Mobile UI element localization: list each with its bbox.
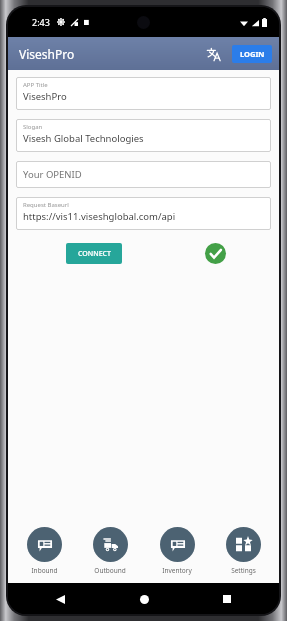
button[interactable]: Recent apps (217, 589, 237, 609)
staticText: LOGIN (240, 49, 265, 59)
staticText: Slogan (23, 123, 43, 131)
button[interactable]: Back (50, 589, 70, 609)
staticText: Your OPENID (23, 168, 82, 181)
button[interactable]: LOGIN (232, 45, 272, 63)
button[interactable]: Home (134, 589, 154, 609)
button[interactable]: APP Title (16, 77, 271, 110)
button[interactable]: Inventory (146, 527, 208, 575)
other: Connection successful (205, 243, 226, 264)
button[interactable]: Outbound (79, 527, 141, 575)
staticText: Request Baseurl (23, 201, 69, 209)
staticText: APP Title (23, 81, 48, 89)
staticText: CONNECT (78, 249, 111, 259)
button[interactable]: Settings (212, 527, 274, 575)
staticText: https://vis11.viseshglobal.com/api (23, 210, 176, 223)
staticText: Settings (231, 566, 256, 575)
button[interactable]: Your OPENID (16, 161, 271, 188)
button[interactable]: Inbound (13, 527, 75, 575)
staticText: Outbound (94, 566, 126, 575)
staticText: 2:43 (32, 16, 50, 28)
staticText: Inventory (162, 566, 192, 575)
button[interactable]: CONNECT (66, 243, 122, 264)
button[interactable]: Slogan (16, 119, 271, 152)
staticText: Visesh Global Technologies (23, 132, 144, 145)
button[interactable]: Translate (203, 43, 225, 65)
button[interactable]: Request Baseurl (16, 197, 271, 230)
staticText: Inbound (31, 566, 58, 575)
staticText: ViseshPro (19, 46, 75, 62)
staticText: ViseshPro (23, 90, 67, 103)
